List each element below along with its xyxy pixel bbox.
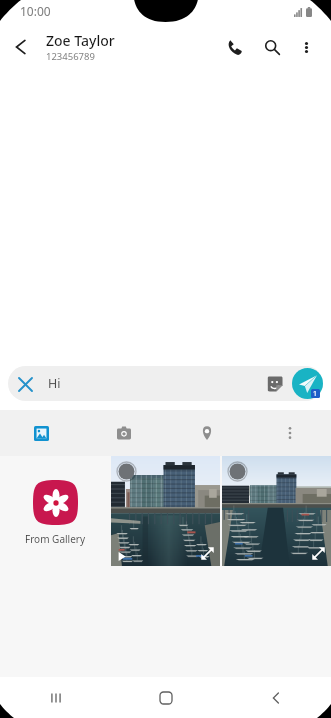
button[interactable]: Close [8,367,42,401]
button[interactable]: More options [292,33,320,61]
button[interactable]: Photo [222,456,331,566]
button[interactable]: More [248,410,331,456]
staticText: Hi [48,375,323,392]
staticText: 123456789 [46,50,95,63]
button[interactable]: Location [165,410,248,456]
button[interactable]: Call [218,31,250,63]
button[interactable]: Gallery [0,410,82,456]
button[interactable]: Photo [111,456,220,566]
staticText: From Gallery [25,532,86,546]
button[interactable]: Camera [82,410,165,456]
button[interactable]: Stickers [266,375,284,393]
staticText: Zoe Taylor [46,31,115,50]
staticText: 1 [313,389,318,398]
button[interactable]: Search [256,31,288,63]
button[interactable]: Recents [0,677,111,718]
button[interactable]: From Gallery [0,456,111,566]
staticText: 10:00 [20,3,51,19]
button[interactable]: Back [221,677,331,718]
button[interactable]: Back [0,26,41,67]
button[interactable]: Send [292,368,323,399]
button[interactable]: Home [111,677,221,718]
